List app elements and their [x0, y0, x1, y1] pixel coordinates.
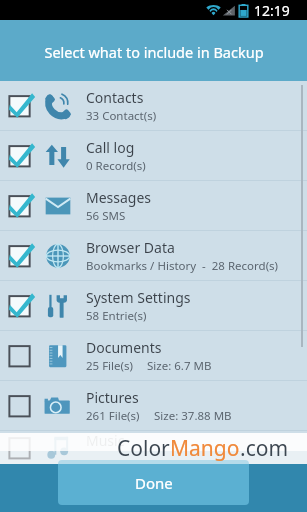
- staticText: Select what to include in Backup: [44, 42, 264, 62]
- button[interactable]: Done: [58, 460, 249, 505]
- staticText: 33 Contact(s): [86, 108, 157, 124]
- staticText: Done: [135, 473, 173, 493]
- button[interactable]: Documents: [0, 331, 307, 381]
- staticText: Browser Data: [86, 238, 175, 257]
- staticText: Color: [117, 434, 170, 463]
- staticText: Size: 37.88 MB: [154, 408, 232, 424]
- button[interactable]: Music: [0, 431, 307, 464]
- staticText: 261 File(s): [86, 408, 140, 424]
- staticText: Documents: [86, 338, 162, 357]
- button[interactable]: Messages: [0, 181, 307, 231]
- staticText: .com: [240, 434, 289, 463]
- staticText: 25 File(s): [86, 358, 133, 374]
- staticText: 58 Entrie(s): [86, 308, 147, 324]
- staticText: Music: [86, 431, 125, 450]
- button[interactable]: Pictures: [0, 381, 307, 431]
- button[interactable]: System Settings: [0, 281, 307, 331]
- button[interactable]: Contacts: [0, 81, 307, 131]
- staticText: Messages: [86, 188, 152, 207]
- staticText: Contacts: [86, 88, 144, 107]
- staticText: 12:19: [254, 1, 290, 20]
- button[interactable]: Browser Data: [0, 231, 307, 281]
- staticText: 0 Record(s): [86, 158, 146, 174]
- staticText: Bookmarks / History - 28 Record(s): [86, 258, 279, 274]
- staticText: Mango: [170, 434, 240, 463]
- button[interactable]: Call log: [0, 131, 307, 181]
- staticText: Call log: [86, 138, 135, 157]
- staticText: System Settings: [86, 288, 191, 307]
- staticText: Pictures: [86, 388, 139, 407]
- staticText: Size: 6.7 MB: [147, 358, 212, 374]
- staticText: 56 SMS: [86, 208, 126, 224]
